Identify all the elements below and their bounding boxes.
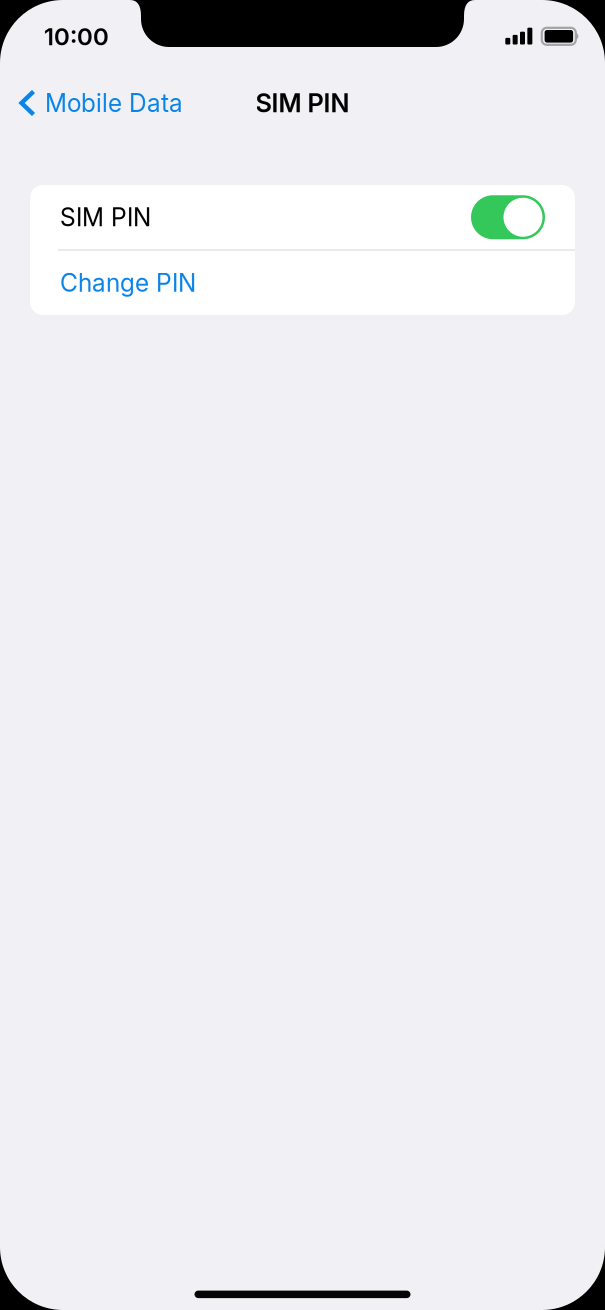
button[interactable]: Change PIN (30, 250, 575, 315)
staticText: SIM PIN (255, 88, 349, 118)
button[interactable]: Mobile Data (0, 72, 197, 134)
staticText: Change PIN (60, 268, 196, 298)
staticText: Mobile Data (45, 88, 183, 118)
staticText: SIM PIN (60, 202, 151, 232)
staticText: 10:00 (44, 22, 109, 51)
button[interactable]: SIM PIN (30, 185, 575, 249)
